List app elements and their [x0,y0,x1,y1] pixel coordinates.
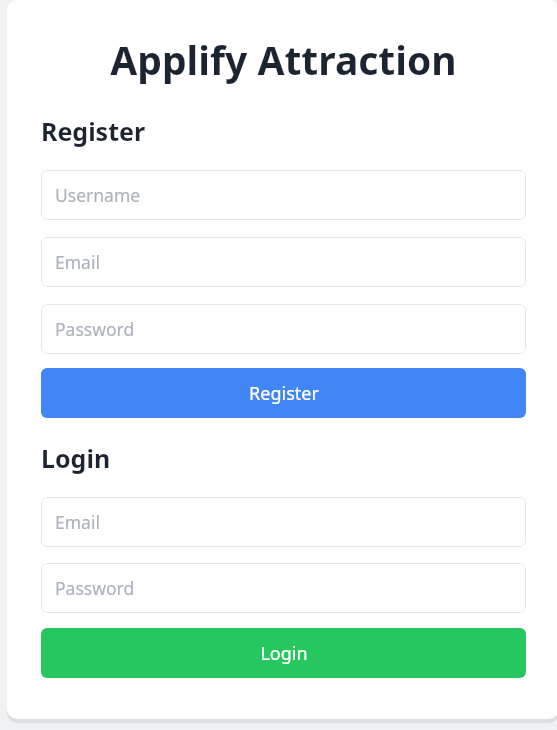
button[interactable]: Username [41,170,526,220]
button[interactable]: Password [41,304,526,354]
staticText: Applify Attraction [41,33,526,86]
button[interactable]: Login [41,628,526,678]
button[interactable]: Email [41,237,526,287]
button[interactable]: Register [41,368,526,418]
staticText: Username [55,183,141,207]
button[interactable]: Email [41,497,526,547]
staticText: Register [249,381,319,406]
staticText: Login [41,441,111,475]
staticText: Password [55,576,135,600]
button[interactable]: Password [41,563,526,613]
staticText: Password [55,317,135,341]
staticText: Email [55,250,100,274]
staticText: Login [260,641,308,666]
staticText: Email [55,510,100,534]
staticText: Register [41,114,146,148]
